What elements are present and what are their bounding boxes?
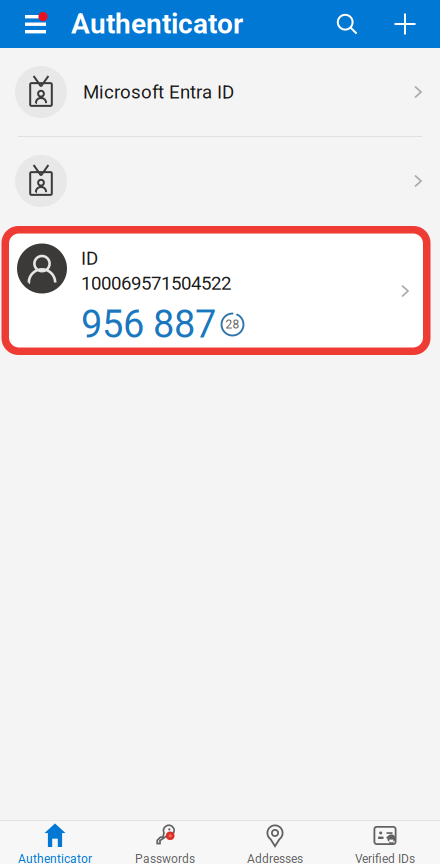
button[interactable]: Authenticator bbox=[0, 821, 110, 864]
staticText: Authenticator bbox=[18, 852, 92, 864]
staticText: ID bbox=[81, 247, 98, 269]
staticText: Addresses bbox=[247, 852, 303, 864]
staticText: 100069571504522 bbox=[81, 272, 231, 294]
staticText: Authenticator bbox=[71, 8, 243, 40]
staticText: Passwords bbox=[135, 852, 195, 864]
button[interactable]: Verified IDs bbox=[330, 821, 440, 864]
staticText: 956 887 bbox=[81, 302, 216, 347]
button[interactable]: Microsoft Entra ID bbox=[0, 48, 440, 136]
button[interactable]: Menu bbox=[13, 0, 59, 48]
button[interactable]: Add account bbox=[381, 0, 429, 48]
button[interactable] bbox=[0, 137, 440, 225]
staticText: Verified IDs bbox=[355, 852, 415, 864]
button[interactable]: Addresses bbox=[220, 821, 330, 864]
staticText: Microsoft Entra ID bbox=[83, 81, 234, 103]
button[interactable]: Passwords bbox=[110, 821, 220, 864]
button[interactable]: Search bbox=[323, 0, 371, 48]
button[interactable]: ID bbox=[0, 225, 440, 355]
staticText: 28 bbox=[225, 317, 239, 332]
